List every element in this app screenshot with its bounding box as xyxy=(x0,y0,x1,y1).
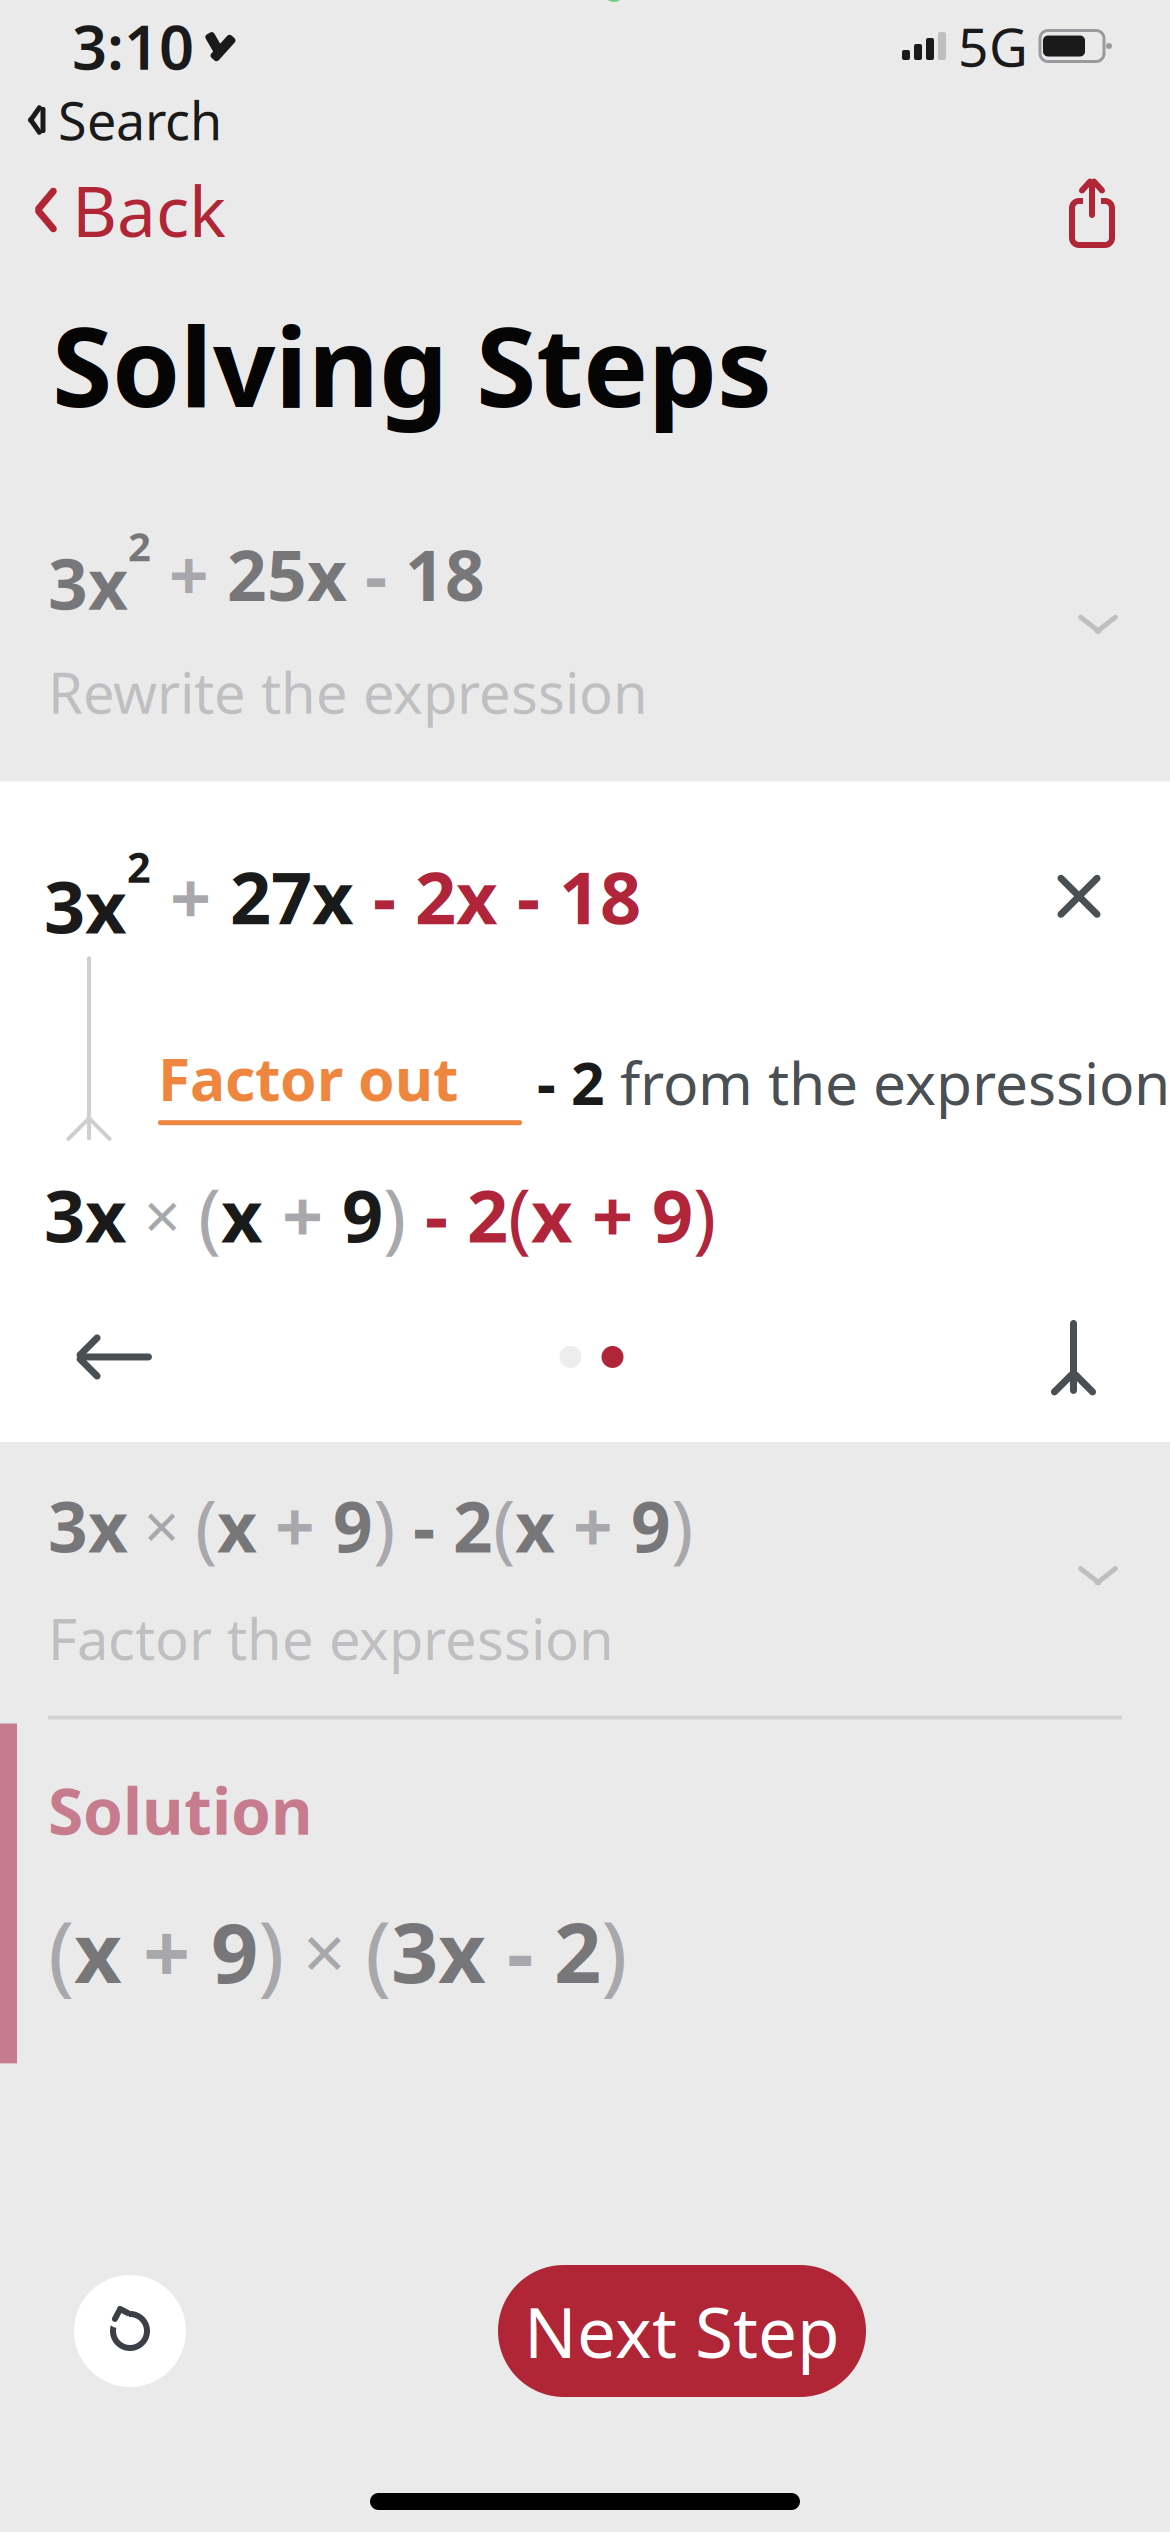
staticText: 9 xyxy=(342,1167,383,1262)
button[interactable]: Undo xyxy=(74,2275,186,2387)
button[interactable]: Close step xyxy=(1040,857,1118,935)
staticText: Search xyxy=(58,85,222,155)
staticText: x xyxy=(515,1479,555,1572)
staticText: - xyxy=(354,848,415,944)
staticText: 9 xyxy=(333,1479,373,1572)
staticText: 9 xyxy=(652,1167,693,1262)
staticText: ( xyxy=(508,1163,531,1266)
staticText: × xyxy=(128,1485,195,1566)
staticText: ( xyxy=(198,1163,221,1266)
staticText: 18 xyxy=(405,528,485,620)
staticText: ( xyxy=(48,1892,74,2009)
button[interactable]: Search xyxy=(28,85,222,155)
staticText: - 2 xyxy=(522,1043,620,1121)
staticText: 2 xyxy=(554,1896,601,2006)
staticText: x xyxy=(74,1896,122,2006)
staticText: Back xyxy=(72,164,226,256)
staticText: Next Step xyxy=(524,2285,840,2377)
staticText: 3x xyxy=(44,1167,127,1262)
staticText: × xyxy=(127,1172,198,1257)
staticText: - xyxy=(406,1167,467,1262)
staticText: ) xyxy=(693,1163,716,1266)
staticText: + xyxy=(151,528,227,620)
staticText: - xyxy=(498,848,559,944)
staticText: + xyxy=(257,1479,333,1572)
staticText: 3x xyxy=(48,1479,128,1572)
staticText: Factor the expression xyxy=(48,1601,614,1675)
staticText: 3x xyxy=(44,858,127,953)
staticText: x xyxy=(217,1479,257,1572)
button[interactable]: 3x xyxy=(0,485,1170,763)
staticText: 3x xyxy=(391,1896,486,2006)
staticText: x xyxy=(531,1167,573,1262)
staticText: x xyxy=(221,1167,263,1262)
staticText: ( xyxy=(365,1892,391,2009)
staticText: ) xyxy=(373,1476,395,1575)
staticText: Factor out xyxy=(158,1039,458,1117)
staticText: 5G xyxy=(958,11,1028,81)
button[interactable]: Back xyxy=(24,156,236,264)
button[interactable]: Next Step xyxy=(498,2265,866,2397)
staticText: ) xyxy=(258,1892,284,2009)
staticText: - xyxy=(486,1896,554,2006)
staticText: Rewrite the expression xyxy=(48,655,648,729)
staticText: 3:10 xyxy=(72,5,194,87)
staticText: 2 xyxy=(127,839,151,894)
staticText: 3x xyxy=(48,537,128,629)
staticText: - xyxy=(347,528,405,620)
button[interactable]: Factor out xyxy=(158,1039,1170,1125)
staticText: 9 xyxy=(211,1896,258,2006)
button[interactable]: Previous hint xyxy=(60,1320,170,1393)
staticText: - xyxy=(395,1479,453,1572)
staticText: 18 xyxy=(559,848,641,944)
staticText: × xyxy=(284,1901,365,2000)
button[interactable]: Next hint xyxy=(1037,1302,1110,1412)
staticText: ( xyxy=(195,1476,217,1575)
staticText: 2 xyxy=(453,1479,493,1572)
staticText: Solution xyxy=(48,1767,313,1852)
staticText: Solving Steps xyxy=(52,292,772,437)
button[interactable]: 3x xyxy=(0,1442,1170,1709)
staticText: 2 xyxy=(128,519,151,572)
staticText: from the expression xyxy=(620,1043,1170,1121)
staticText: 25x xyxy=(227,528,347,620)
staticText: + xyxy=(573,1167,652,1262)
button[interactable]: Share xyxy=(1058,175,1126,245)
staticText: + xyxy=(122,1896,211,2006)
staticText: 9 xyxy=(631,1479,671,1572)
staticText: ) xyxy=(601,1892,627,2009)
staticText: 2x xyxy=(415,848,498,944)
staticText: ) xyxy=(383,1163,406,1266)
staticText: 2 xyxy=(467,1167,508,1262)
staticText: 27x xyxy=(230,848,354,944)
staticText: + xyxy=(151,848,230,944)
staticText: ) xyxy=(671,1476,693,1575)
staticText: + xyxy=(555,1479,631,1572)
staticText: ( xyxy=(493,1476,515,1575)
staticText: + xyxy=(263,1167,342,1262)
